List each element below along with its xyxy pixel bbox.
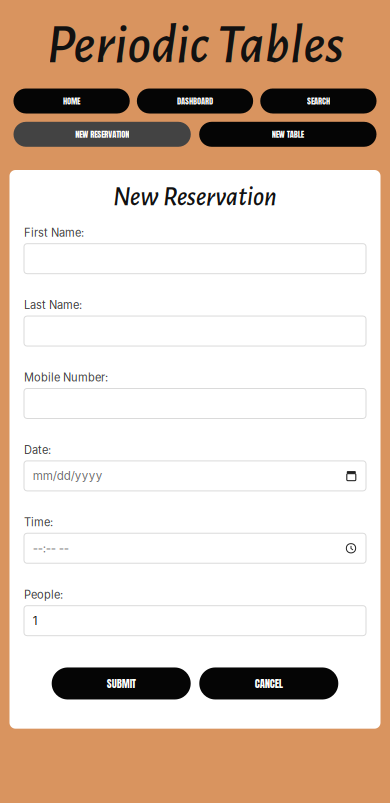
button[interactable]: NEW TABLE xyxy=(199,122,376,147)
staticText: Periodic Tables xyxy=(46,17,343,73)
staticText: 1 xyxy=(33,614,38,628)
button[interactable]: SUBMIT xyxy=(52,667,191,699)
staticText: People: xyxy=(24,588,63,601)
staticText: HOME xyxy=(63,95,80,107)
staticText: Last Name: xyxy=(24,298,82,312)
staticText: First Name: xyxy=(24,226,84,239)
button[interactable]: NEW RESERVATION xyxy=(13,122,191,147)
button[interactable]: CANCEL xyxy=(199,667,338,699)
staticText: --:-- -- xyxy=(33,541,69,555)
staticText: SUBMIT xyxy=(107,675,136,691)
staticText: New Reservation xyxy=(113,184,277,211)
button[interactable]: DASHBOARD xyxy=(137,88,253,113)
staticText: Mobile Number: xyxy=(24,371,108,384)
button[interactable]: HOME xyxy=(13,88,130,113)
staticText: CANCEL xyxy=(255,675,283,691)
button[interactable]: SEARCH xyxy=(260,88,376,113)
staticText: Date: xyxy=(24,443,51,457)
staticText: Time: xyxy=(24,516,53,529)
staticText: NEW RESERVATION xyxy=(75,128,129,141)
staticText: SEARCH xyxy=(307,95,330,107)
staticText: DASHBOARD xyxy=(177,95,213,107)
staticText: NEW TABLE xyxy=(272,128,304,141)
staticText: mm/dd/yyyy xyxy=(33,469,103,483)
